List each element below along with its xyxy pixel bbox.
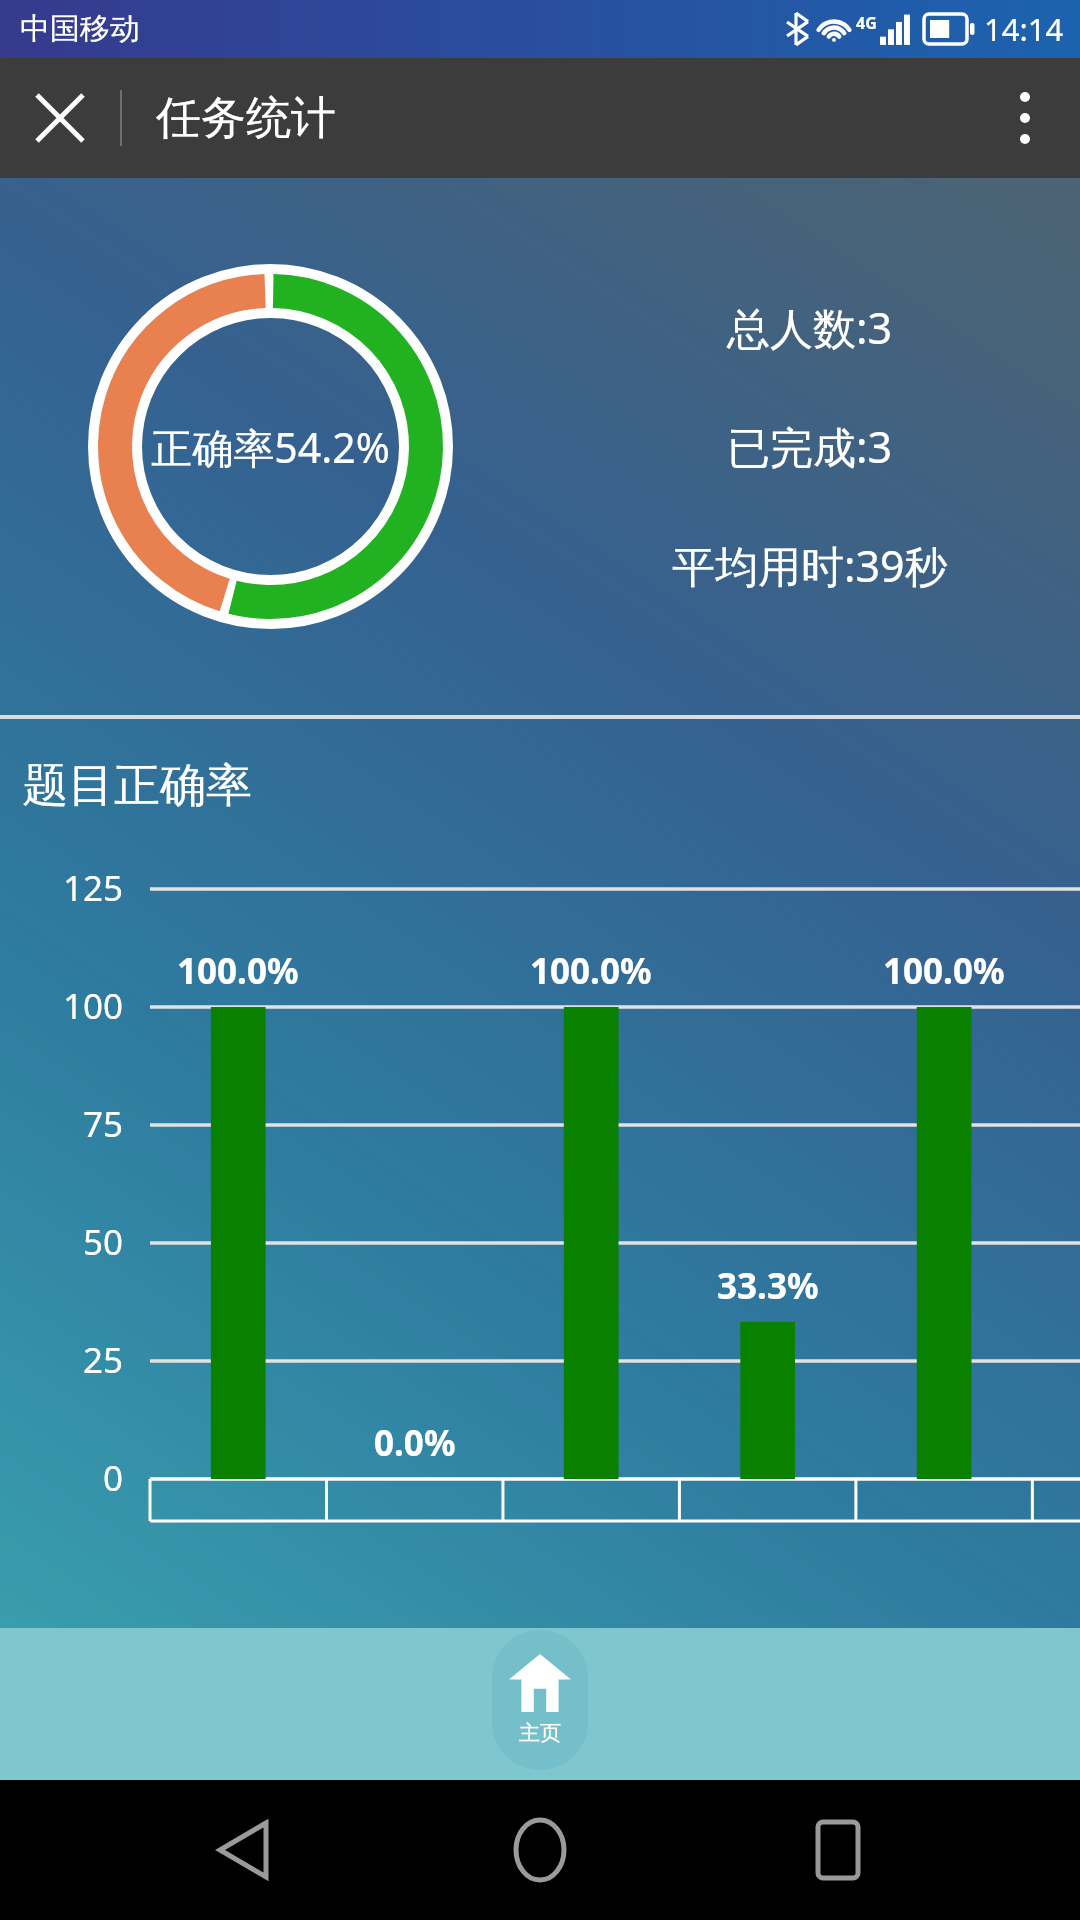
staticText: 100.0% xyxy=(177,947,299,995)
staticText: 100.0% xyxy=(530,947,652,995)
button[interactable]: Back xyxy=(188,1795,298,1905)
staticText: 14:14 xyxy=(984,8,1064,50)
staticText: 0 xyxy=(103,1454,124,1502)
staticText: 主页 xyxy=(519,1720,561,1746)
button[interactable]: Home xyxy=(485,1795,595,1905)
staticText: 25 xyxy=(83,1336,124,1384)
staticText: 中国移动 xyxy=(20,10,140,48)
staticText: 已完成:3 xyxy=(727,417,893,476)
staticText: 100 xyxy=(63,982,124,1030)
staticText: 50 xyxy=(83,1218,124,1266)
staticText: 33.3% xyxy=(717,1262,819,1310)
staticText: 125 xyxy=(63,864,124,912)
staticText: 任务统计 xyxy=(156,90,336,147)
staticText: 0.0% xyxy=(374,1419,456,1467)
button[interactable]: 主页 xyxy=(492,1630,588,1770)
staticText: 平均用时:39秒 xyxy=(672,536,948,595)
button[interactable]: Close xyxy=(0,58,120,178)
staticText: 题目正确率 xyxy=(22,757,252,815)
staticText: 总人数:3 xyxy=(727,298,893,357)
staticText: 100.0% xyxy=(883,947,1005,995)
button[interactable]: Recents xyxy=(783,1795,893,1905)
button[interactable]: More options xyxy=(970,58,1080,178)
staticText: 75 xyxy=(83,1100,124,1148)
staticText: 4G xyxy=(856,12,877,34)
staticText: 正确率54.2% xyxy=(151,419,390,475)
